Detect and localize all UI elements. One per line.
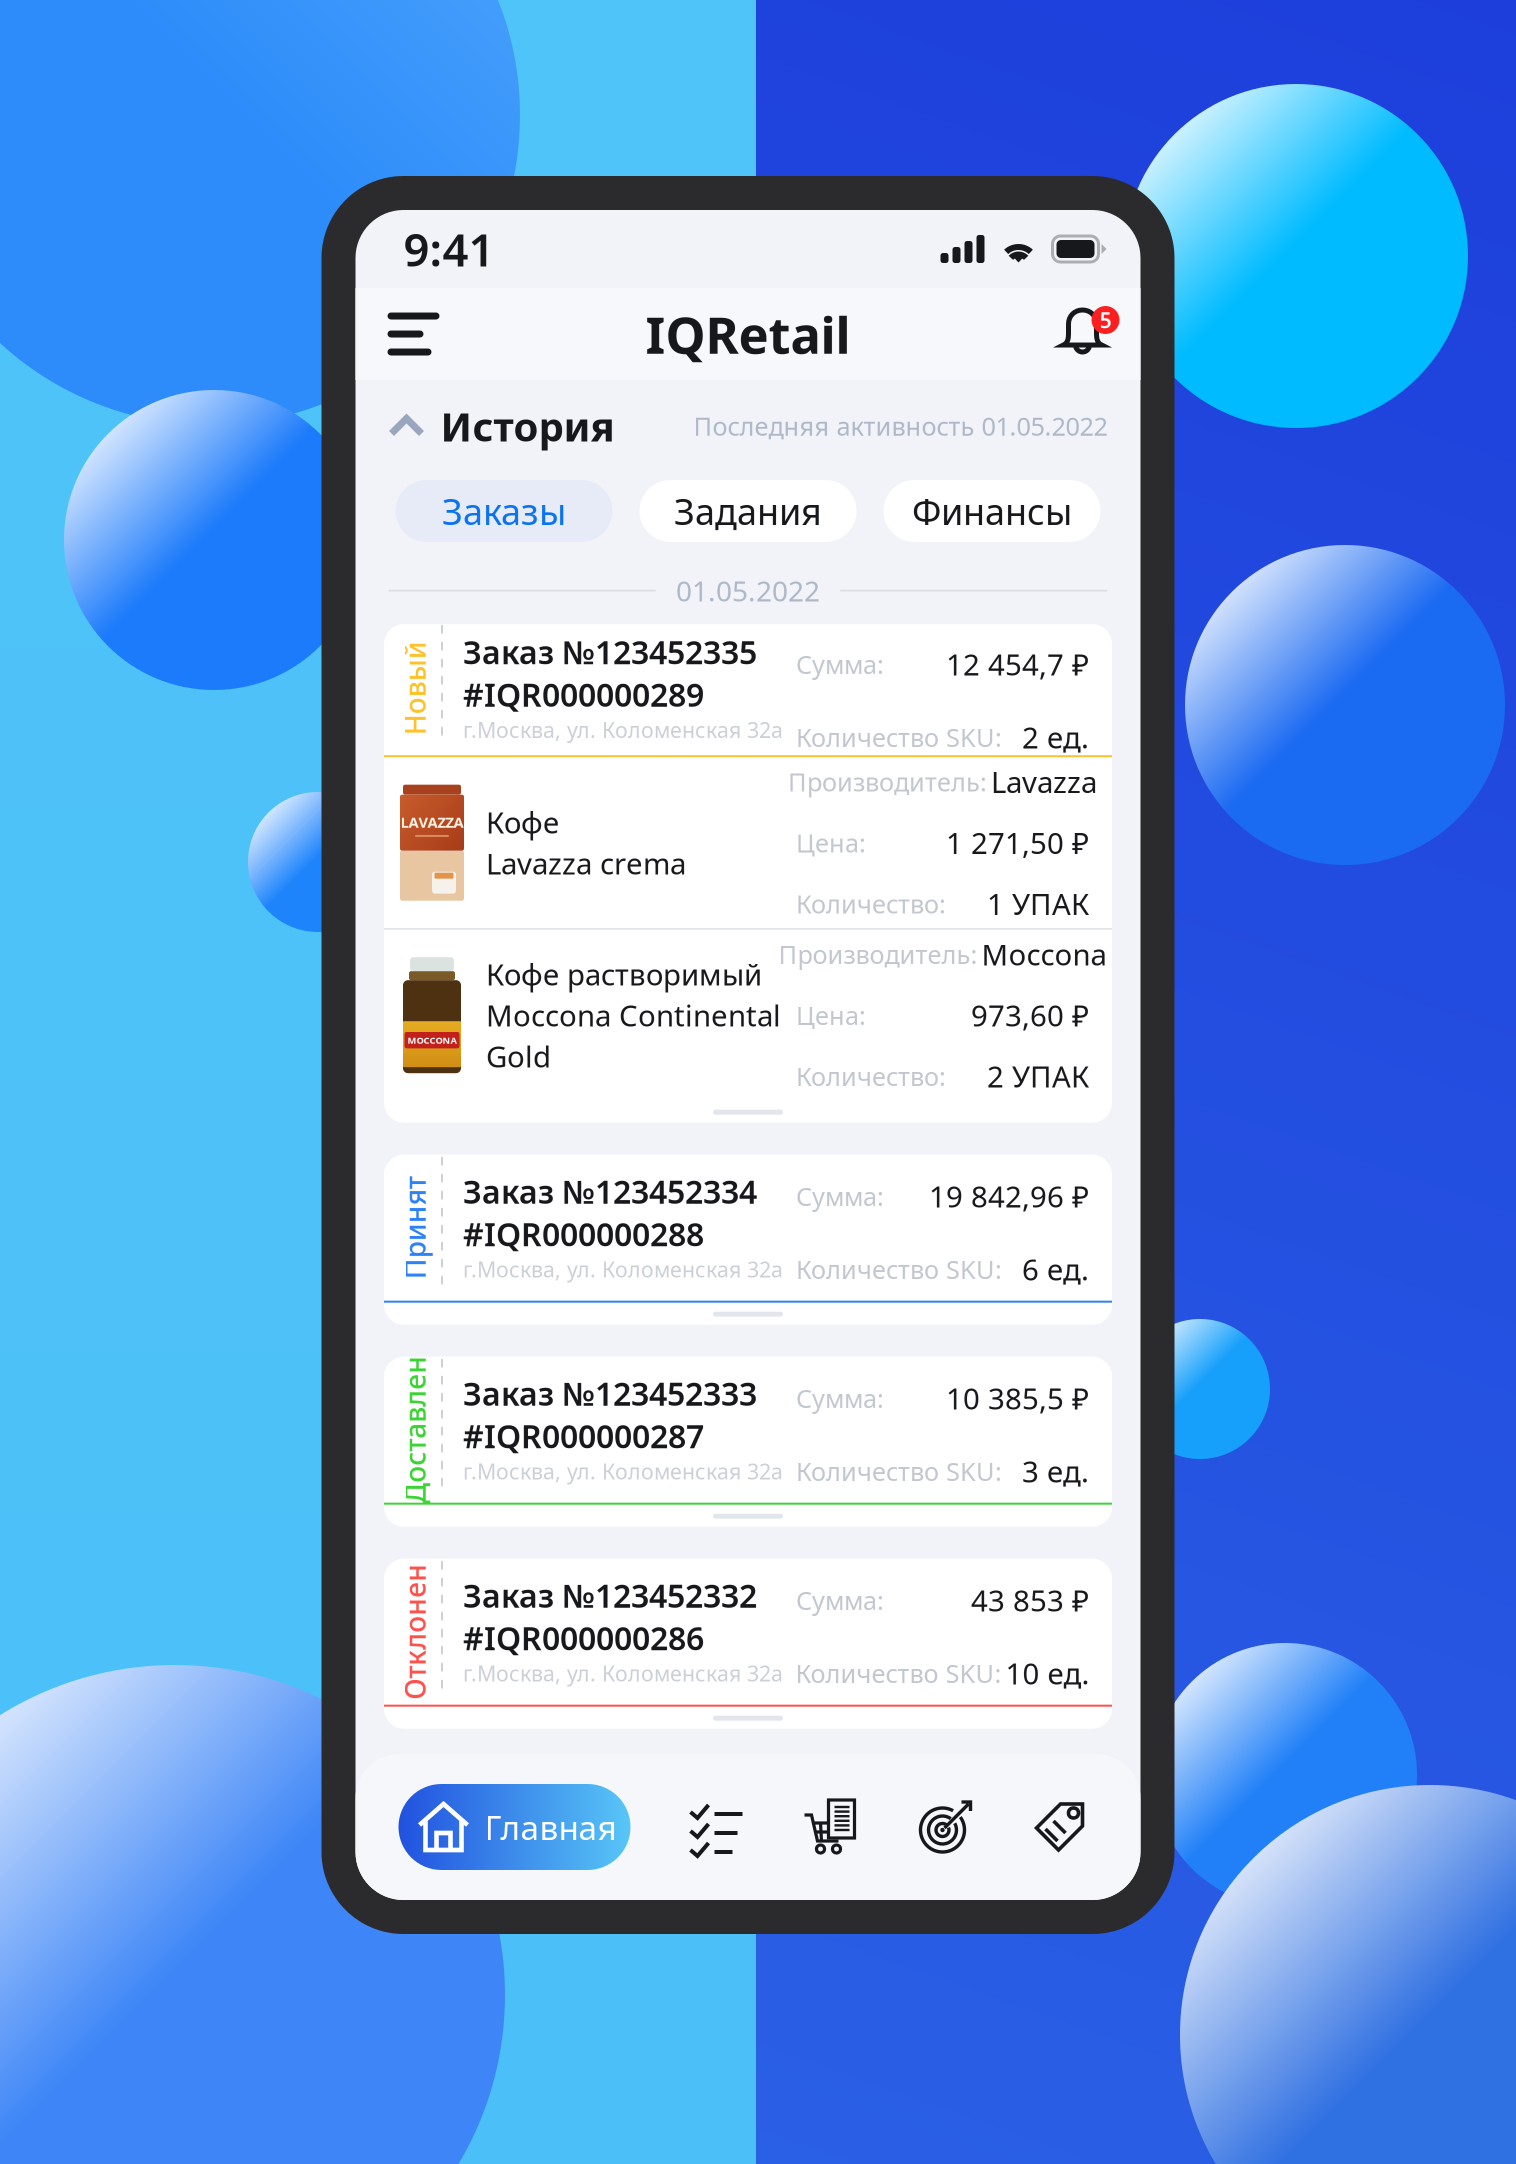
staticText: IQRetail [645,300,850,368]
staticText: Кофе растворимый [486,955,762,994]
staticText: Заказы [442,487,566,535]
button[interactable]: Заказы [395,480,612,542]
button[interactable]: Главная [398,1784,630,1870]
staticText: Производитель: [778,937,977,971]
staticText: 3 ед. [1022,1452,1089,1491]
staticText: Последняя активность 01.05.2022 [693,409,1107,443]
staticText: 19 842,96 ₽ [929,1177,1089,1216]
staticText: Сумма: [796,647,884,681]
staticText: Новый [368,670,462,707]
button[interactable]: Доставлен [384,1357,1112,1527]
staticText: 01.05.2022 [676,572,820,609]
staticText: 2 ед. [1022,718,1089,757]
button[interactable]: Tasks [690,1799,744,1855]
staticText: Финансы [912,487,1072,535]
staticText: Сумма: [796,1179,884,1213]
staticText: 5 [1099,306,1111,334]
button[interactable]: Задания [639,480,856,542]
staticText: Moccona Continental [486,996,781,1035]
staticText: 6 ед. [1022,1250,1089,1289]
button[interactable]: Принят [384,1155,1112,1325]
staticText: Количество SKU: [796,1252,1002,1286]
staticText: Количество: [796,1059,946,1093]
staticText: г.Москва, ул. Коломенская 32а [463,1255,783,1283]
staticText: MOCCONA [407,1034,456,1046]
staticText: #IQR000000288 [463,1212,704,1255]
staticText: 973,60 ₽ [971,996,1089,1035]
staticText: 10 ед. [1005,1654,1089,1693]
staticText: #IQR000000289 [463,673,704,716]
staticText: Заказ №123452332 [463,1574,757,1616]
staticText: История [440,399,614,452]
staticText: Gold [486,1037,551,1076]
staticText: Цена: [796,998,866,1032]
staticText: Кофе [486,803,559,842]
staticText: Отклонен [347,1613,483,1650]
staticText: 10 385,5 ₽ [946,1379,1089,1418]
staticText: Moccona [981,935,1106,974]
button[interactable]: Отклонен [384,1559,1112,1729]
staticText: Цена: [796,826,866,859]
staticText: Заказ №123452334 [463,1170,757,1212]
staticText: 2 УПАК [987,1057,1089,1096]
staticText: Принят [363,1209,466,1246]
button[interactable]: Orders [804,1798,858,1856]
staticText: Количество SKU: [796,1454,1002,1488]
staticText: Количество SKU: [796,720,1002,754]
button[interactable]: Финансы [883,480,1100,542]
staticText: Производитель: [788,765,987,798]
staticText: г.Москва, ул. Коломенская 32а [463,1659,783,1687]
button[interactable]: История [388,399,614,452]
button[interactable]: Goals [918,1798,972,1856]
staticText: г.Москва, ул. Коломенская 32а [463,716,783,744]
button[interactable]: Promotions [1032,1798,1088,1856]
staticText: 43 853 ₽ [971,1581,1089,1620]
staticText: Главная [484,1805,616,1849]
staticText: Lavazza crema [486,844,686,883]
staticText: Количество: [796,887,946,920]
staticText: Сумма: [796,1381,884,1415]
staticText: 9:41 [403,219,494,279]
staticText: Заказ №123452333 [463,1372,757,1414]
button[interactable]: Notifications [1026,294,1106,374]
staticText: 1 271,50 ₽ [946,823,1089,862]
staticText: Lavazza [991,762,1097,801]
staticText: 1 УПАК [987,884,1089,923]
staticText: Задания [674,487,822,535]
staticText: 12 454,7 ₽ [946,645,1089,684]
staticText: LAVAZZA [400,812,463,832]
staticText: Количество SKU: [795,1656,1001,1690]
staticText: #IQR000000287 [463,1414,704,1457]
button[interactable]: Menu [387,294,467,374]
staticText: г.Москва, ул. Коломенская 32а [463,1457,783,1485]
staticText: Доставлен [341,1411,489,1448]
staticText: Сумма: [796,1583,884,1617]
staticText: #IQR000000286 [463,1616,704,1659]
staticText: Заказ №123452335 [463,631,757,673]
